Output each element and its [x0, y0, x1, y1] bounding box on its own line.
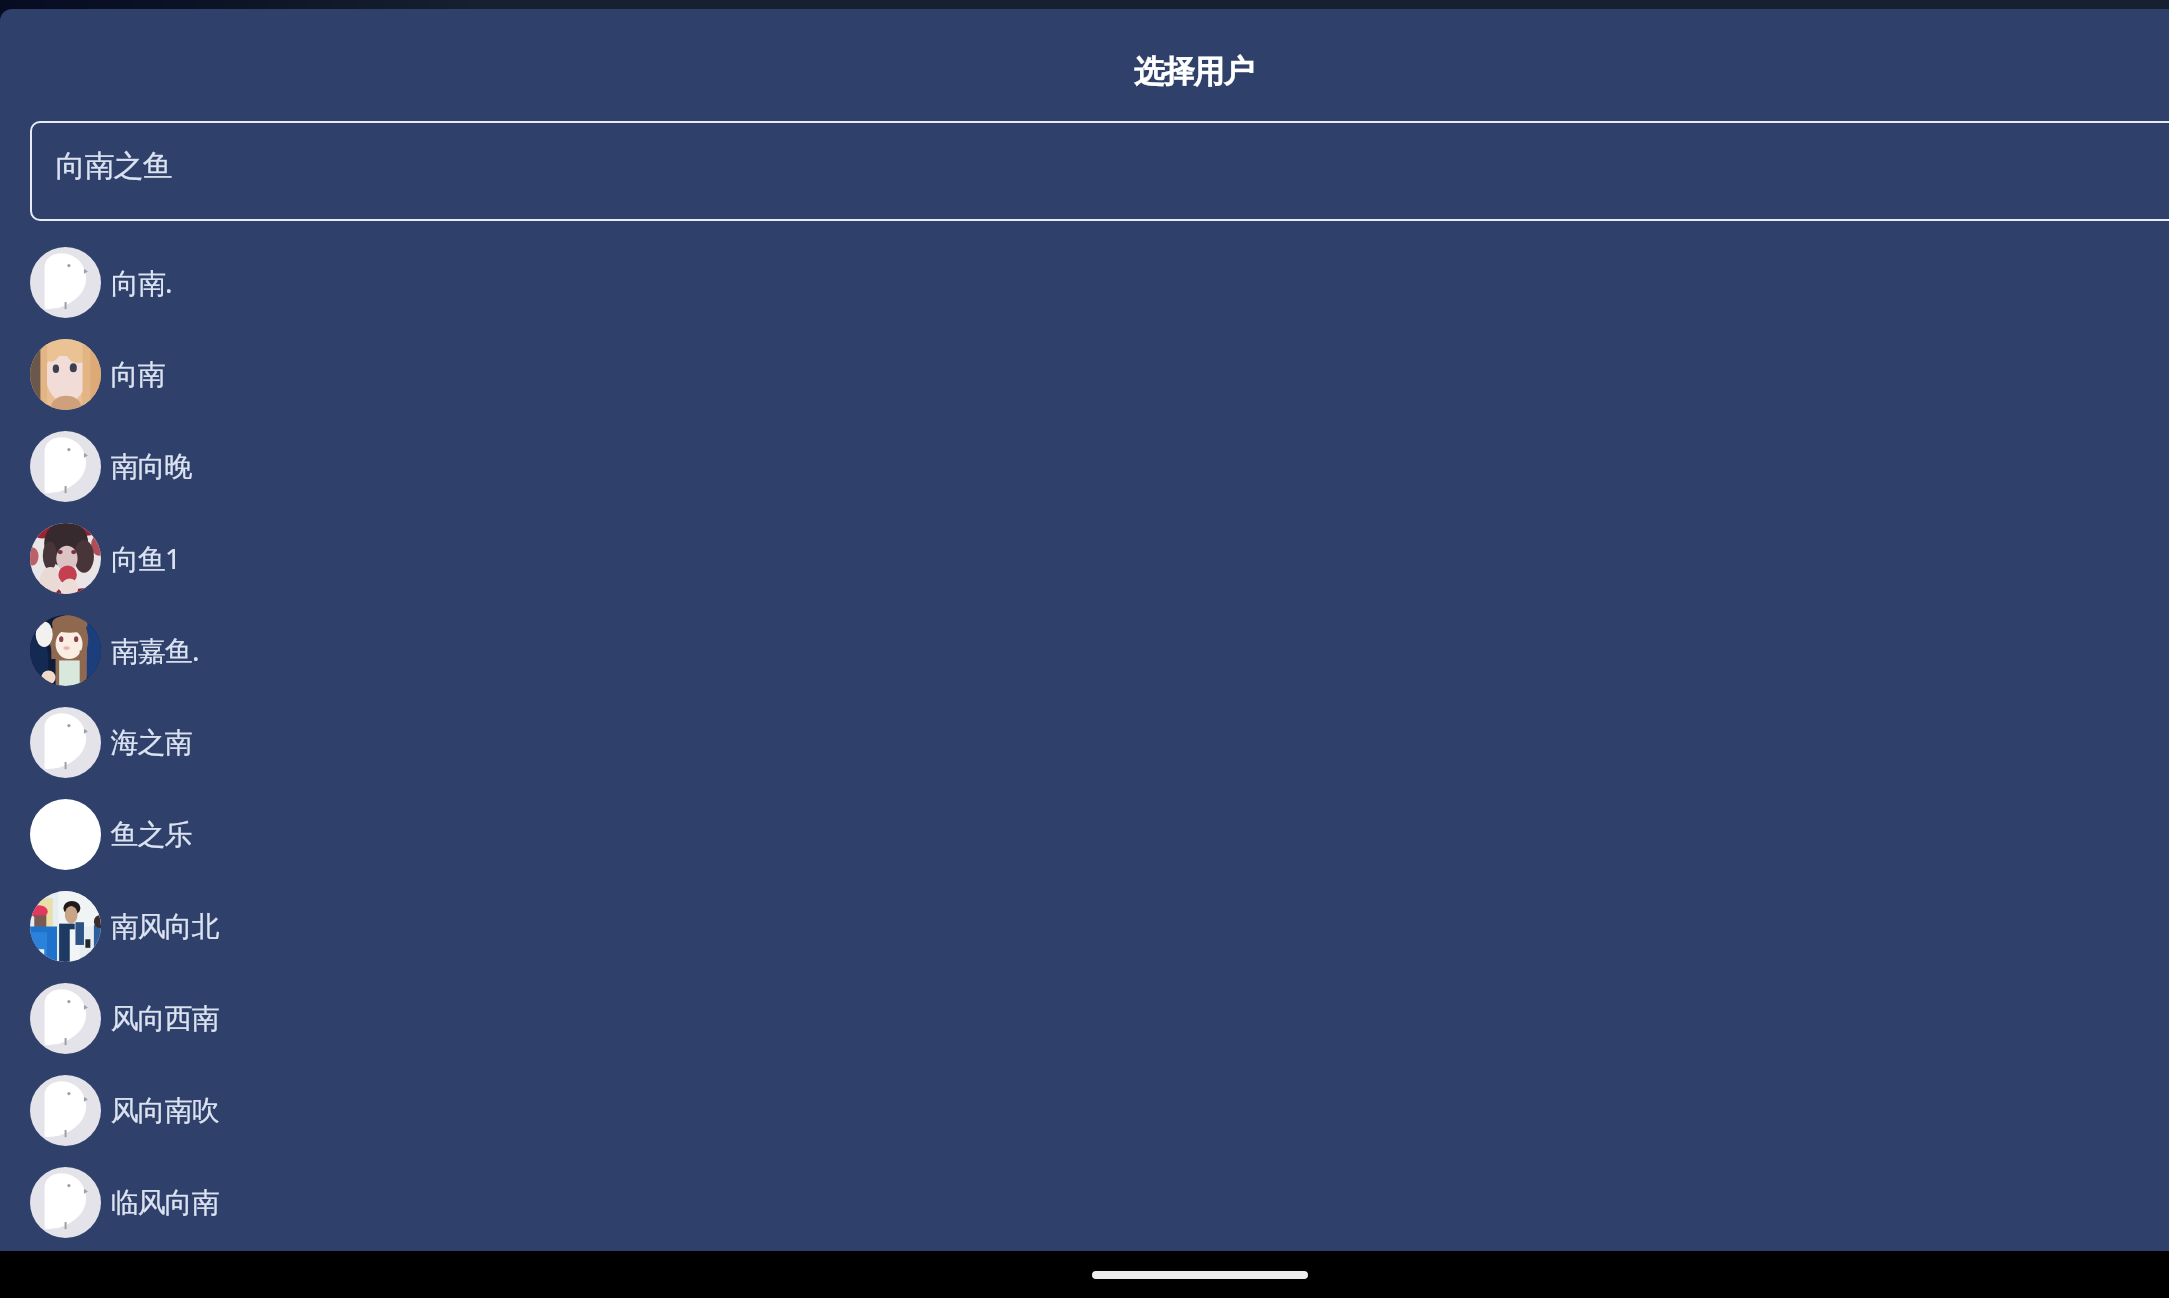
staticText: 向南. — [111, 263, 172, 301]
staticText: 南风向北 — [111, 909, 219, 944]
button[interactable]: 向南. — [0, 236, 2169, 328]
button[interactable]: 搜索用户 — [30, 121, 2169, 221]
staticText: 风向西南 — [111, 1001, 219, 1036]
button[interactable]: 风向西南 — [0, 972, 2169, 1064]
staticText: 向南之鱼 — [56, 147, 172, 185]
button[interactable]: 风向南吹 — [0, 1064, 2169, 1156]
staticText: 风向南吹 — [111, 1093, 219, 1128]
button[interactable]: 临风向南 — [0, 1156, 2169, 1248]
button[interactable]: 南向晚 — [0, 420, 2169, 512]
staticText: 南嘉鱼. — [111, 631, 199, 669]
staticText: 临风向南 — [111, 1185, 219, 1220]
button[interactable]: 南风向北 — [0, 880, 2169, 972]
staticText: 南向晚 — [111, 449, 192, 484]
staticText: 选择用户 — [1134, 52, 1254, 91]
button[interactable]: 向南 — [0, 328, 2169, 420]
staticText: 海之南 — [111, 725, 192, 760]
button[interactable]: 鱼之乐 — [0, 788, 2169, 880]
staticText: 向南 — [111, 357, 165, 392]
button[interactable]: 南嘉鱼. — [0, 604, 2169, 696]
staticText: 鱼之乐 — [111, 817, 192, 852]
staticText: 向鱼1 — [111, 539, 181, 577]
button[interactable]: 海之南 — [0, 696, 2169, 788]
button[interactable]: 向鱼1 — [0, 512, 2169, 604]
